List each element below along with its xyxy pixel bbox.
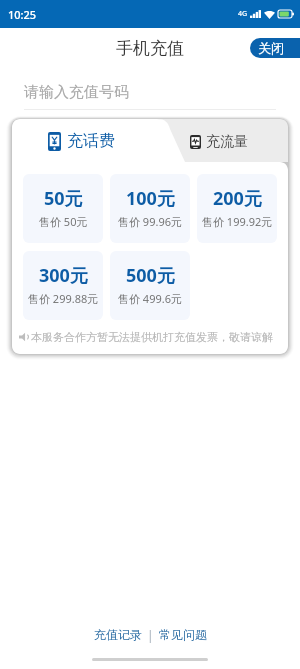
staticText: 500元 (126, 263, 175, 288)
button[interactable]: 常见问题 (154, 623, 212, 646)
staticText: 售价 50元 (39, 214, 88, 229)
button[interactable]: 300元 (23, 251, 103, 320)
button[interactable]: 200元 (197, 174, 277, 243)
button[interactable]: 关闭 (250, 38, 300, 58)
button[interactable]: 充值记录 (89, 623, 147, 646)
staticText: 售价 299.88元 (28, 291, 99, 306)
button[interactable]: 50元 (23, 174, 103, 243)
button[interactable]: 500元 (110, 251, 190, 320)
staticText: 200元 (213, 186, 262, 211)
staticText: 手机充值 (116, 38, 184, 59)
staticText: 售价 99.96元 (118, 214, 182, 229)
staticText: 10:25 (8, 7, 37, 22)
staticText: 300元 (39, 263, 88, 288)
staticText: 充值记录 (94, 627, 142, 642)
staticText: 关闭 (258, 40, 284, 56)
staticText: 售价 199.92元 (202, 214, 273, 229)
staticText: 售价 499.6元 (118, 291, 182, 306)
staticText: 100元 (126, 186, 175, 211)
staticText: 充话费 (67, 131, 115, 151)
staticText: 本服务合作方暂无法提供机打充值发票，敬请谅解 (31, 330, 273, 344)
staticText: 请输入充值号码 (24, 83, 129, 102)
staticText: | (147, 627, 154, 643)
button[interactable]: 充话费 (48, 131, 115, 151)
button[interactable]: 100元 (110, 174, 190, 243)
staticText: 充流量 (206, 133, 248, 151)
staticText: 50元 (44, 186, 83, 211)
staticText: 常见问题 (159, 627, 207, 642)
button[interactable]: 充流量 (190, 133, 248, 151)
staticText: 4G (238, 9, 248, 19)
